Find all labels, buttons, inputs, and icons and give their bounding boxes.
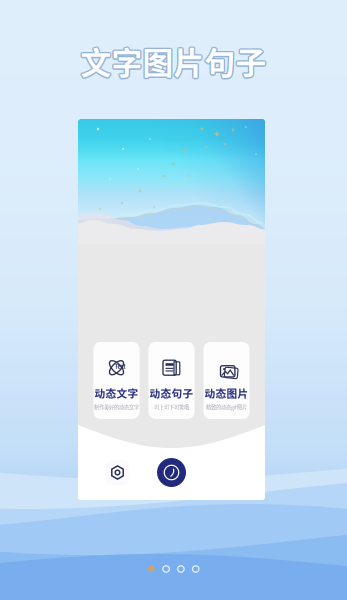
staticText: 精致的动态gif图片 <box>206 403 247 411</box>
staticText: Text <box>115 363 126 370</box>
staticText: 制作美好的动态文字 <box>94 403 139 411</box>
staticText: 文字图片句子 <box>79 38 265 82</box>
staticText: 文字图片句子 <box>79 40 265 84</box>
staticText: 文字图片句子 <box>80 39 266 83</box>
staticText: 动态图片 <box>204 385 248 401</box>
staticText: 文字图片句子 <box>80 37 266 82</box>
button[interactable]: Text <box>93 342 139 419</box>
button[interactable]: 动态句子 <box>148 342 194 419</box>
staticText: 文字图片句子 <box>81 38 267 82</box>
button[interactable]: Create <box>157 458 186 487</box>
staticText: 文字图片句子 <box>79 39 265 83</box>
button[interactable]: Settings <box>105 460 130 485</box>
staticText: 可上可下可笑哦 <box>154 403 189 411</box>
staticText: 文字图片句子 <box>80 40 266 84</box>
staticText: 动态句子 <box>149 385 193 401</box>
staticText: 文字图片句子 <box>81 40 267 84</box>
staticText: 动态文字 <box>94 385 138 401</box>
button[interactable]: 动态图片 <box>203 342 249 419</box>
staticText: 文字图片句子 <box>82 39 268 83</box>
